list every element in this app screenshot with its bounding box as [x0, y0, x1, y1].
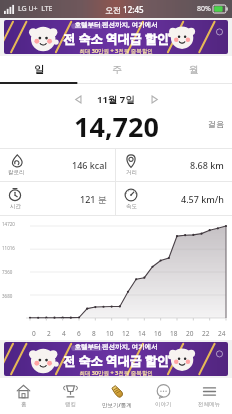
- staticText: 칼로리: [8, 169, 25, 176]
- staticText: 랭킹: [65, 401, 76, 408]
- button[interactable]: 이전 날짜: [69, 90, 87, 108]
- staticText: 홈: [21, 401, 27, 408]
- staticText: 주: [112, 63, 122, 76]
- staticText: 22: [202, 329, 210, 338]
- staticText: 속도: [126, 203, 137, 210]
- button[interactable]: 주: [78, 56, 155, 82]
- button[interactable]: 광고 배너: [4, 342, 228, 376]
- staticText: 121 분: [80, 193, 107, 205]
- button[interactable]: 칼로리: [0, 149, 115, 181]
- staticText: 최대 30만원 + 3천원 중복할인: [79, 47, 153, 54]
- staticText: 8: [92, 329, 96, 338]
- button[interactable]: 이야기: [140, 378, 186, 414]
- button[interactable]: 만보기/통계: [94, 378, 140, 414]
- staticText: 최대 30만원 + 3천원 중복할인: [79, 369, 153, 376]
- staticText: 14720: [2, 221, 15, 227]
- staticText: 호텔부터 펜션까지, 여기에서: [74, 20, 158, 29]
- staticText: 7360: [2, 269, 13, 275]
- button[interactable]: 시간: [0, 182, 115, 215]
- staticText: 만보기/통계: [102, 401, 132, 409]
- staticText: 11016: [2, 245, 15, 251]
- staticText: 3680: [2, 293, 13, 299]
- staticText: 전 숙소 역대급 할인: [63, 352, 169, 368]
- staticText: 4.57 km/h: [181, 193, 224, 205]
- button[interactable]: 속도: [116, 182, 232, 215]
- staticText: 8.68 km: [190, 159, 224, 171]
- staticText: 거리: [126, 169, 137, 176]
- button[interactable]: 홈: [0, 378, 47, 414]
- staticText: 12: [122, 329, 130, 338]
- button[interactable]: 일: [0, 56, 78, 82]
- staticText: 6: [77, 329, 81, 338]
- staticText: 20: [186, 329, 194, 338]
- staticText: 시간: [10, 203, 21, 210]
- staticText: 16: [154, 329, 162, 338]
- button[interactable]: 전체메뉴: [186, 378, 232, 414]
- staticText: 오전 12:45: [105, 4, 144, 15]
- staticText: LG U+ LTE: [18, 4, 53, 14]
- staticText: 4: [62, 329, 66, 338]
- staticText: 전체메뉴: [198, 401, 220, 408]
- staticText: 11월 7일: [97, 93, 135, 106]
- staticText: 걸음: [208, 119, 224, 129]
- staticText: 14: [138, 329, 146, 338]
- staticText: 0: [32, 329, 36, 338]
- staticText: 80%: [197, 4, 211, 14]
- staticText: 10: [106, 329, 114, 338]
- staticText: 18: [170, 329, 178, 338]
- staticText: 호텔부터 펜션까지, 여기에서: [74, 342, 158, 351]
- staticText: 이야기: [155, 401, 172, 408]
- staticText: 14,720: [74, 108, 159, 140]
- staticText: 일: [34, 63, 44, 76]
- staticText: 146 kcal: [72, 159, 107, 171]
- button[interactable]: 광고 배너: [4, 20, 228, 54]
- button[interactable]: 랭킹: [47, 378, 94, 414]
- staticText: 월: [189, 63, 199, 76]
- staticText: 24: [218, 329, 226, 338]
- button[interactable]: 다음 날짜: [145, 90, 163, 108]
- button[interactable]: 거리: [116, 149, 232, 181]
- button[interactable]: 월: [155, 56, 232, 82]
- staticText: 전 숙소 역대급 할인: [63, 30, 169, 46]
- staticText: 2: [47, 329, 51, 338]
